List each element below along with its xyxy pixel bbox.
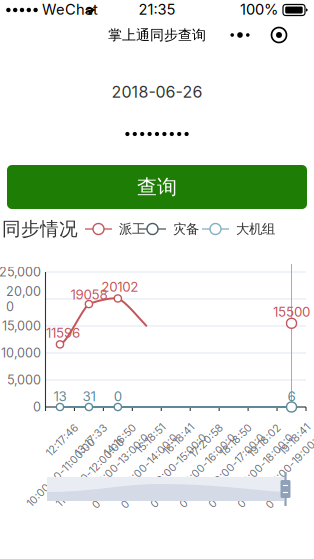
button[interactable]: 2018-06-26 (0, 83, 314, 101)
staticText: 17:00:00-18:00:00 (223, 460, 310, 485)
staticText: 5,000 (7, 372, 41, 388)
staticText: 15,000 (2, 318, 41, 334)
staticText: 20,000 (6, 284, 41, 314)
staticText: 16:00:00-17:00:00 (194, 460, 281, 485)
staticText: 14:00:00-15:00:00 (136, 460, 223, 485)
staticText: 查询 (137, 174, 177, 200)
staticText: 12:00:00-13:00:00 (77, 460, 165, 485)
staticText: 15500 (273, 304, 310, 320)
staticText: 6 (287, 388, 295, 404)
staticText: 14:16:50 (100, 434, 141, 447)
button[interactable]: Close (266, 24, 292, 46)
staticText: 25,000 (0, 264, 41, 280)
staticText: 19058 (70, 286, 107, 303)
button[interactable]: 查询 (7, 165, 307, 209)
button[interactable]: More (225, 24, 255, 46)
staticText: 15:00:00-16:00:00 (165, 460, 252, 485)
staticText: 掌上通同步查询 (108, 26, 206, 44)
staticText: 11596 (46, 325, 80, 341)
staticText: 同步情况 (2, 217, 78, 241)
staticText: 13:00:00-14:00:00 (106, 460, 194, 485)
staticText: 12:17:46 (42, 434, 83, 447)
staticText: 100% (240, 1, 278, 18)
staticText: 16:18:41 (160, 434, 199, 447)
staticText: 派工 (119, 221, 145, 237)
staticText: 10,000 (1, 345, 41, 361)
button[interactable]: 派工 (68, 217, 148, 241)
staticText: 20102 (101, 279, 138, 295)
staticText: 31 (82, 388, 95, 404)
staticText: 11:00:00-12:00:00 (44, 466, 136, 479)
staticText: 0 (114, 388, 122, 404)
staticText: 18:18:50 (216, 434, 257, 447)
staticText: 10:00:00-11:00:00 (15, 466, 107, 479)
staticText: 15:18:51 (133, 434, 170, 447)
staticText: 0 (33, 399, 41, 415)
staticText: WeChat (42, 1, 98, 18)
staticText: 大机组 (236, 221, 275, 237)
staticText: 17:20:58 (185, 434, 228, 447)
staticText: 19:18:02 (244, 434, 286, 447)
staticText: 18:00:00-19:00:00 (251, 460, 314, 485)
staticText: 灾备 (173, 221, 199, 237)
button[interactable]: 大机组 (185, 217, 265, 241)
staticText: 2018-06-26 (111, 82, 202, 102)
staticText: 13:17:33 (71, 434, 112, 447)
button[interactable]: 灾备 (122, 217, 202, 241)
staticText: 21:35 (138, 1, 175, 18)
staticText: 13 (53, 388, 66, 404)
staticText: 19:18:41 (276, 434, 314, 447)
